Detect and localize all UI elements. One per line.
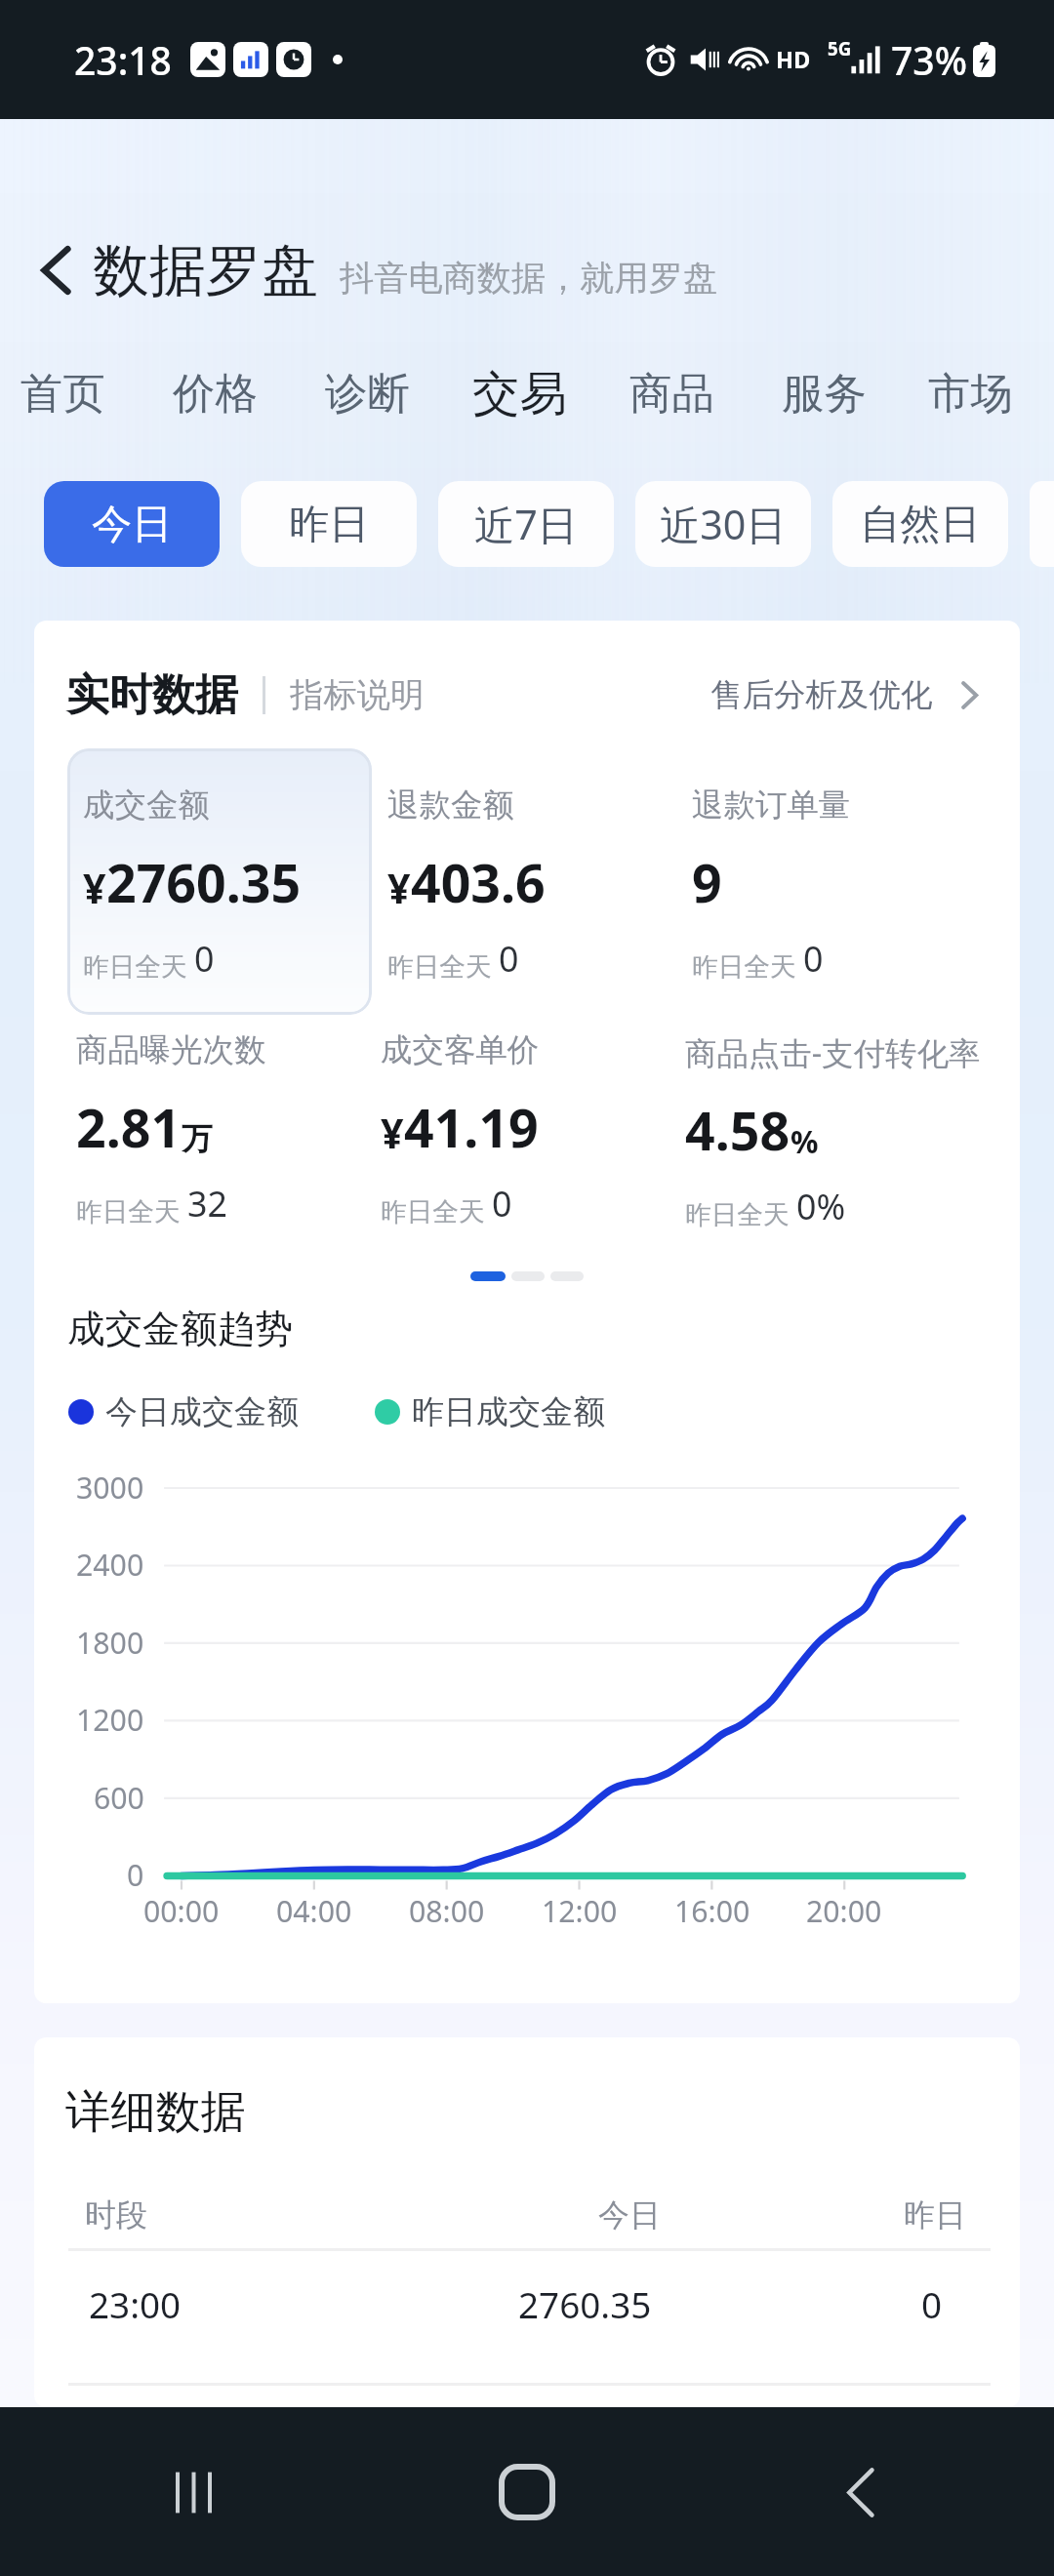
staticText: 昨日全天	[76, 1192, 187, 1228]
staticText: 详细数据	[65, 2084, 246, 2141]
staticText: 0	[492, 1180, 512, 1228]
staticText: 昨日全天	[692, 947, 803, 983]
button[interactable]: 首页	[0, 353, 139, 434]
staticText: 9	[692, 847, 722, 918]
staticText: 商品	[629, 367, 714, 421]
button[interactable]: 商品曝光次数	[76, 1030, 381, 1228]
button[interactable]: 近30日	[635, 481, 811, 567]
button[interactable]: 成交金额	[67, 748, 372, 1015]
button[interactable]: 退款金额	[372, 748, 676, 1015]
staticText: 73%	[891, 34, 967, 86]
staticText: 00:00	[143, 1891, 220, 1931]
staticText: 商品点击-支付转化率	[685, 1030, 981, 1073]
button[interactable]: 价格	[139, 353, 291, 434]
staticText: 昨日	[289, 499, 370, 549]
button[interactable]: 23:00	[34, 2280, 1020, 2329]
staticText: 昨日全天	[381, 1192, 492, 1228]
staticText: 0	[194, 935, 215, 983]
staticText: 0	[921, 2280, 943, 2329]
button[interactable]: 售后分析及优化	[710, 664, 988, 726]
button[interactable]: 成交客单价	[381, 1030, 685, 1228]
staticText: 今日	[92, 499, 173, 549]
staticText: 服务	[782, 367, 867, 421]
staticText: 售后分析及优化	[710, 675, 933, 715]
staticText: ¥	[387, 861, 411, 915]
staticText: 退款订单量	[692, 785, 851, 825]
staticText: 1200	[76, 1700, 144, 1740]
staticText: 4.58	[685, 1095, 790, 1166]
button[interactable]	[1030, 481, 1054, 567]
staticText: 诊断	[325, 367, 410, 421]
button[interactable]: 服务	[748, 353, 900, 434]
staticText: 市场	[928, 367, 1013, 421]
staticText: 指标说明	[290, 674, 425, 716]
staticText: 2760.35	[518, 2280, 652, 2329]
staticText: 昨日全天	[685, 1195, 796, 1230]
button[interactable]: 交易	[443, 350, 595, 437]
button[interactable]: Home	[463, 2428, 591, 2556]
staticText: 23:00	[89, 2280, 182, 2329]
staticText: 0	[803, 935, 824, 983]
button[interactable]: 自然日	[832, 481, 1008, 567]
staticText: 数据罗盘	[93, 235, 318, 306]
staticText: 2760.35	[106, 847, 302, 918]
staticText: 昨日成交金额	[412, 1391, 605, 1432]
staticText: 昨日全天	[83, 947, 194, 983]
staticText: 抖音电商数据，就用罗盘	[340, 257, 718, 300]
button[interactable]: Back	[0, 227, 82, 313]
button[interactable]: 商品点击-支付转化率	[685, 1030, 998, 1230]
staticText: 昨日	[904, 2195, 966, 2234]
staticText: 自然日	[860, 499, 981, 549]
staticText: 04:00	[276, 1891, 352, 1931]
staticText: ¥	[381, 1106, 404, 1160]
staticText: %	[790, 1120, 819, 1162]
staticText: HD	[776, 44, 811, 75]
staticText: 600	[94, 1778, 144, 1818]
button[interactable]: 市场	[900, 353, 1040, 434]
staticText: 退款金额	[387, 785, 514, 825]
staticText: 32	[187, 1180, 227, 1228]
button[interactable]: 商品	[595, 353, 748, 434]
staticText: 成交金额趋势	[67, 1306, 293, 1353]
staticText: ¥	[83, 861, 106, 915]
staticText: 首页	[20, 367, 105, 421]
staticText: 近30日	[660, 497, 787, 551]
staticText: 实时数据	[66, 668, 238, 722]
button[interactable]: Back	[796, 2428, 925, 2556]
staticText: 交易	[472, 364, 567, 423]
staticText: 近7日	[474, 497, 579, 551]
staticText: 23:18	[74, 34, 172, 86]
staticText: 成交客单价	[381, 1030, 540, 1070]
staticText: 12:00	[542, 1891, 618, 1931]
staticText: 价格	[173, 367, 258, 421]
staticText: 今日成交金额	[105, 1391, 299, 1432]
staticText: 0	[127, 1855, 144, 1895]
staticText: 08:00	[409, 1891, 485, 1931]
staticText: 2400	[76, 1545, 144, 1585]
staticText: 2.81	[76, 1092, 182, 1163]
staticText: 16:00	[674, 1891, 750, 1931]
button[interactable]: 诊断	[291, 353, 443, 434]
staticText: 昨日全天	[387, 947, 499, 983]
button[interactable]: 今日	[44, 481, 220, 567]
staticText: 5G	[828, 36, 852, 60]
button[interactable]: 近7日	[438, 481, 614, 567]
staticText: 时段	[85, 2195, 147, 2234]
staticText: 商品曝光次数	[76, 1030, 266, 1070]
staticText: 3000	[76, 1468, 144, 1508]
staticText: 41.19	[404, 1092, 539, 1163]
staticText: 403.6	[411, 847, 546, 918]
staticText: 1800	[76, 1623, 144, 1663]
staticText: 今日	[598, 2195, 661, 2234]
staticText: 0	[499, 935, 519, 983]
staticText: 万	[182, 1120, 213, 1159]
button[interactable]: 退款订单量	[676, 748, 998, 1015]
staticText: 0%	[796, 1183, 846, 1230]
staticText: 成交金额	[83, 785, 210, 825]
button[interactable]: Recents	[129, 2428, 258, 2556]
staticText: 20:00	[806, 1891, 882, 1931]
button[interactable]: 昨日	[241, 481, 417, 567]
